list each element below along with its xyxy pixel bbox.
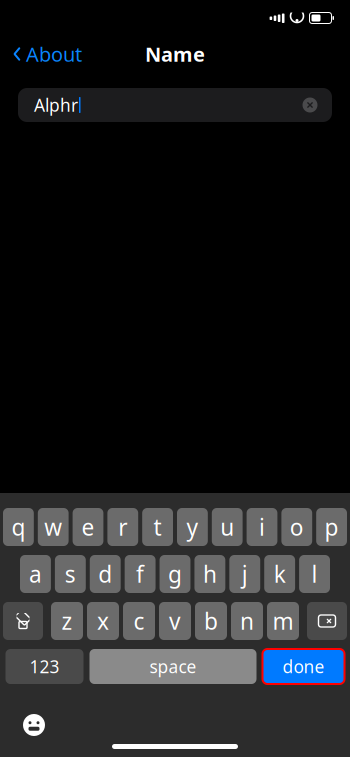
staticText: y xyxy=(186,512,198,542)
button[interactable]: h xyxy=(194,555,225,593)
button[interactable]: Delete xyxy=(307,602,347,640)
button[interactable]: d xyxy=(90,555,121,593)
staticText: h xyxy=(203,559,217,589)
staticText: a xyxy=(29,559,42,589)
button[interactable]: o xyxy=(281,508,312,546)
staticText: v xyxy=(169,606,181,636)
staticText: q xyxy=(11,512,25,542)
staticText: Name xyxy=(145,41,205,67)
button[interactable]: r xyxy=(107,508,138,546)
staticText: t xyxy=(154,512,162,542)
button[interactable]: done xyxy=(262,649,344,684)
staticText: r xyxy=(118,512,127,542)
button[interactable]: w xyxy=(38,508,69,546)
button[interactable]: f xyxy=(125,555,156,593)
staticText: e xyxy=(81,512,94,542)
staticText: z xyxy=(61,606,72,636)
button[interactable]: t xyxy=(142,508,173,546)
button[interactable]: e xyxy=(73,508,103,546)
button[interactable]: About xyxy=(0,35,82,73)
staticText: i xyxy=(259,512,265,542)
button[interactable]: space xyxy=(89,649,256,684)
button[interactable]: 123 xyxy=(5,649,83,684)
staticText: n xyxy=(240,606,254,636)
button[interactable]: u xyxy=(212,508,243,546)
staticText: k xyxy=(274,559,286,589)
button[interactable]: Shift xyxy=(3,602,43,640)
button[interactable]: p xyxy=(316,508,347,546)
button[interactable]: s xyxy=(55,555,86,593)
staticText: s xyxy=(65,559,76,589)
staticText: w xyxy=(44,512,62,542)
button[interactable]: a xyxy=(20,555,51,593)
staticText: u xyxy=(220,512,234,542)
button[interactable]: v xyxy=(159,602,191,640)
staticText: 123 xyxy=(29,655,59,678)
button[interactable]: Emoji keyboard xyxy=(0,707,46,743)
button[interactable]: b xyxy=(195,602,227,640)
staticText: p xyxy=(325,512,339,542)
staticText: Alphr xyxy=(34,93,78,116)
button[interactable]: g xyxy=(160,555,190,593)
button[interactable]: c xyxy=(123,602,155,640)
button[interactable]: i xyxy=(247,508,277,546)
staticText: d xyxy=(98,559,112,589)
staticText: x xyxy=(97,606,109,636)
staticText: l xyxy=(312,559,318,589)
button[interactable]: x xyxy=(87,602,119,640)
button[interactable]: q xyxy=(3,508,34,546)
button[interactable]: y xyxy=(177,508,208,546)
staticText: m xyxy=(272,606,293,636)
staticText: b xyxy=(204,606,218,636)
button[interactable]: n xyxy=(231,602,263,640)
staticText: o xyxy=(290,512,304,542)
button[interactable]: z xyxy=(51,602,83,640)
button[interactable]: m xyxy=(267,602,299,640)
button[interactable]: k xyxy=(264,555,295,593)
button[interactable]: j xyxy=(229,555,260,593)
staticText: g xyxy=(168,559,182,589)
button[interactable]: l xyxy=(299,555,330,593)
button[interactable]: Clear text xyxy=(302,91,332,119)
staticText: About xyxy=(26,41,82,67)
staticText: j xyxy=(242,559,248,589)
staticText: f xyxy=(136,559,144,589)
staticText: done xyxy=(282,655,324,678)
staticText: space xyxy=(149,655,196,678)
staticText: c xyxy=(133,606,144,636)
